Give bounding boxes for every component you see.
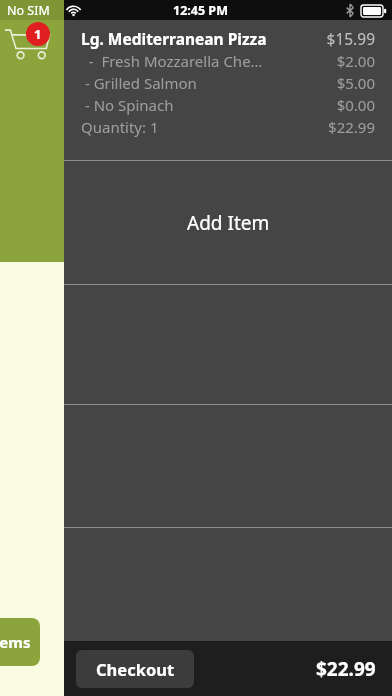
staticText: 1 — [34, 25, 42, 43]
staticText: 12:45 PM — [173, 2, 228, 19]
staticText: $22.99 — [328, 117, 375, 137]
button[interactable]: Checkout — [76, 650, 194, 688]
button[interactable]: Items — [0, 618, 40, 666]
staticText: Checkout — [96, 658, 175, 680]
button[interactable]: Lg. Mediterranean Pizza — [64, 20, 392, 160]
staticText: $5.00 — [336, 73, 375, 93]
button[interactable]: Add Item — [64, 161, 392, 284]
staticText: - Fresh Mozzarella Che… — [81, 51, 263, 71]
staticText: - No Spinach — [81, 95, 174, 115]
staticText: Items — [0, 632, 31, 652]
staticText: No SIM — [7, 2, 50, 19]
staticText: Lg. Mediterranean Pizza — [81, 28, 267, 49]
staticText: Quantity: 1 — [81, 117, 159, 137]
staticText: $2.00 — [336, 51, 375, 71]
staticText: Add Item — [187, 210, 270, 236]
staticText: $22.99 — [316, 656, 376, 682]
staticText: - Grilled Salmon — [81, 73, 197, 93]
staticText: $15.99 — [326, 28, 375, 49]
staticText: $0.00 — [336, 95, 375, 115]
button[interactable]: Cart — [0, 0, 64, 262]
